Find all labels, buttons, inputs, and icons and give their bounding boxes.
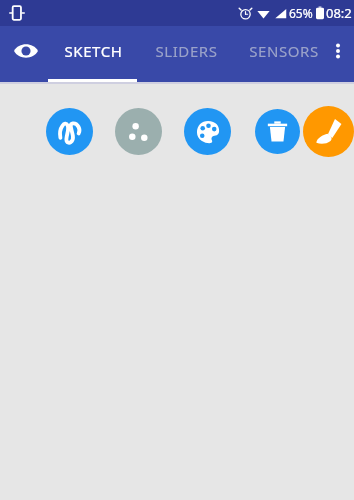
staticText: 08:2 (326, 4, 352, 22)
staticText: 65% (289, 5, 313, 21)
button[interactable]: SENSORS (234, 26, 334, 76)
staticText: SENSORS (249, 41, 319, 61)
button[interactable]: SLIDERS (138, 26, 234, 76)
staticText: SKETCH (64, 41, 123, 61)
button[interactable]: Palette (184, 108, 231, 155)
button[interactable]: Scribble (46, 108, 93, 155)
staticText: SLIDERS (155, 41, 218, 61)
button[interactable]: More options (322, 35, 354, 67)
button[interactable]: Preview (4, 29, 48, 73)
button[interactable]: Delete (255, 109, 300, 154)
button[interactable]: Dots (115, 108, 162, 155)
button[interactable]: SKETCH (48, 26, 138, 76)
button[interactable]: Brush (303, 106, 354, 157)
